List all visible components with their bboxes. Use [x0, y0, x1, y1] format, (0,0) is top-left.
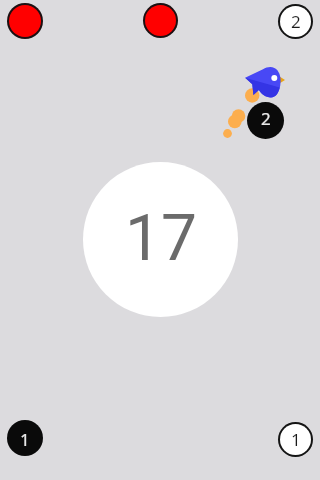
staticText: 1 — [291, 428, 301, 451]
button[interactable]: Red token — [143, 3, 178, 38]
button[interactable]: Red token — [7, 3, 43, 39]
staticText: 2 — [261, 107, 271, 130]
button[interactable]: 17 — [83, 162, 238, 317]
staticText: 17 — [125, 201, 197, 276]
button[interactable]: Bird — [220, 62, 288, 142]
staticText: 1 — [20, 428, 30, 451]
button[interactable]: 1 — [7, 420, 43, 456]
button[interactable]: 1 — [278, 422, 313, 457]
button[interactable]: 2 — [278, 4, 313, 39]
staticText: 2 — [291, 10, 301, 33]
button[interactable]: 2 — [247, 102, 284, 139]
